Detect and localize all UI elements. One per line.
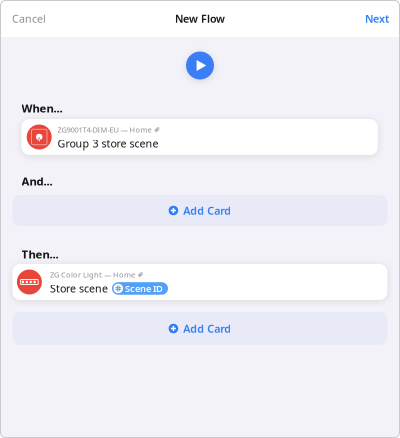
button[interactable]: Add Card [12, 312, 387, 345]
staticText: When... [21, 100, 62, 116]
button[interactable]: Cancel [12, 0, 56, 37]
button[interactable]: ZG Color Light — Home [12, 264, 387, 300]
staticText: Add Card [183, 203, 231, 218]
staticText: Then... [21, 246, 58, 262]
button[interactable]: Add Card [12, 195, 387, 226]
staticText: Store scene [50, 281, 108, 296]
staticText: Add Card [183, 321, 231, 336]
button[interactable]: ZG9001T4-DIM-EU — Home [21, 119, 378, 155]
staticText: New Flow [175, 11, 225, 26]
staticText: Group 3 store scene [57, 136, 158, 151]
staticText: Scene ID [125, 282, 163, 295]
staticText: ZG9001T4-DIM-EU — Home [57, 125, 151, 135]
button[interactable]: Run flow [186, 51, 214, 79]
staticText: And... [21, 173, 52, 189]
staticText: Next [365, 11, 389, 26]
staticText: Cancel [12, 11, 46, 26]
staticText: ZG Color Light — Home [50, 270, 135, 280]
button[interactable]: Next [357, 0, 389, 37]
